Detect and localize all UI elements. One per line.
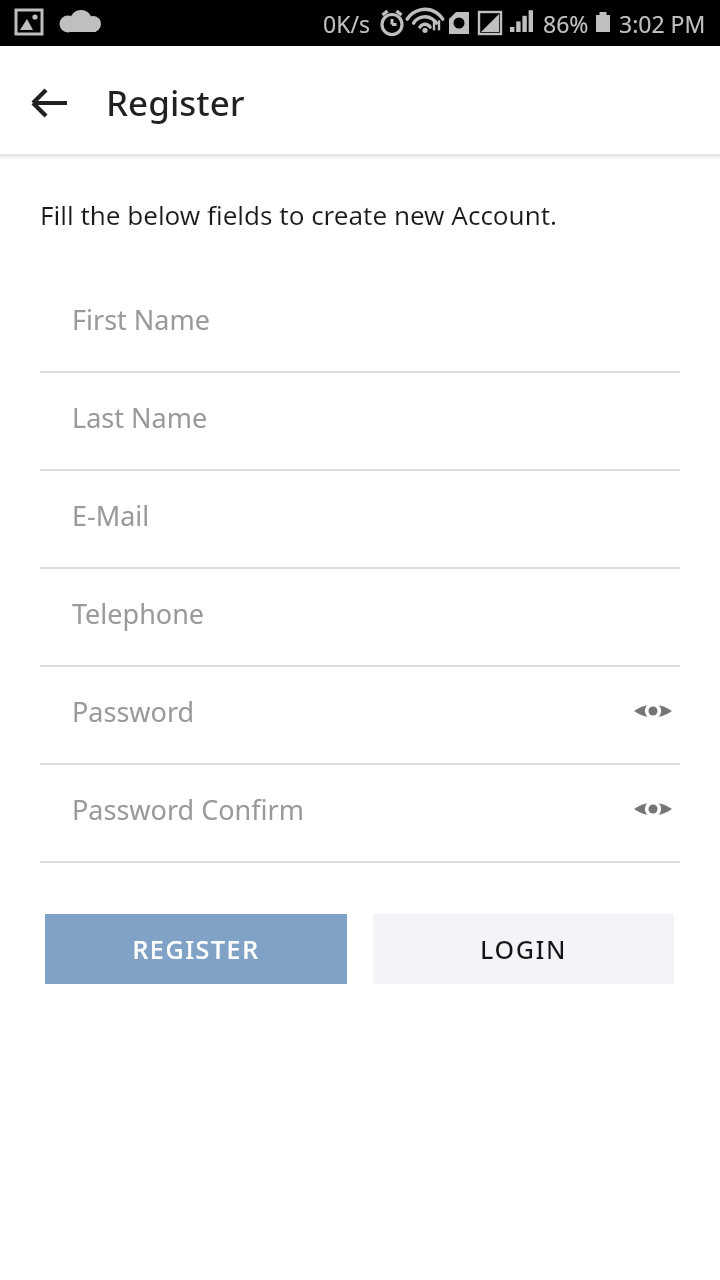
button[interactable]: Show password	[626, 684, 680, 738]
button[interactable]: E-Mail	[0, 471, 720, 569]
staticText: 3:02 PM	[619, 8, 706, 39]
button[interactable]: Telephone	[0, 569, 720, 667]
staticText: Fill the below fields to create new Acco…	[40, 197, 558, 232]
staticText: Password	[72, 693, 195, 730]
staticText: Password Confirm	[72, 791, 304, 828]
staticText: LOGIN	[480, 932, 567, 966]
button[interactable]: LOGIN	[373, 914, 674, 984]
staticText: REGISTER	[132, 932, 260, 966]
staticText: E-Mail	[72, 497, 150, 534]
button[interactable]: Password	[0, 667, 720, 765]
button[interactable]: Password Confirm	[0, 765, 720, 863]
button[interactable]: Back	[22, 75, 78, 131]
button[interactable]: First Name	[0, 275, 720, 373]
button[interactable]: REGISTER	[45, 914, 347, 984]
staticText: 0K/s	[323, 8, 370, 39]
staticText: Telephone	[72, 595, 205, 632]
staticText: First Name	[72, 301, 210, 338]
staticText: Last Name	[72, 399, 208, 436]
staticText: Register	[106, 79, 245, 127]
staticText: 86%	[543, 8, 589, 39]
button[interactable]: Last Name	[0, 373, 720, 471]
button[interactable]: Show password	[626, 782, 680, 836]
